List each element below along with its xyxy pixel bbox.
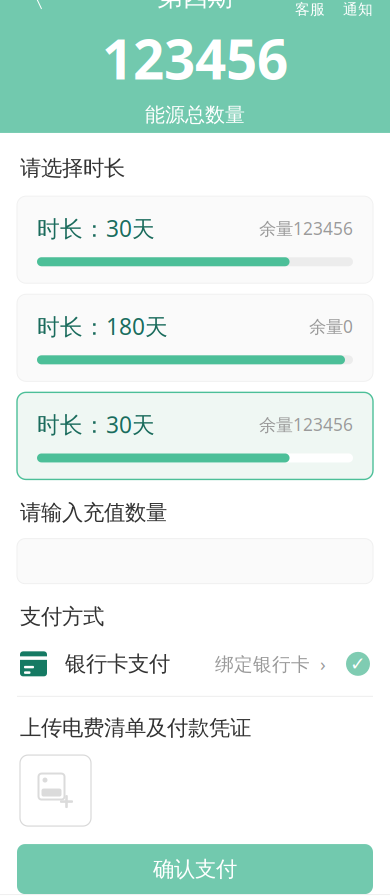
button[interactable]: Upload image [20, 755, 91, 826]
staticText: 〈 [16, 0, 45, 15]
button[interactable]: 我的 [312, 894, 390, 896]
button[interactable]: 时长：30天 [17, 196, 373, 283]
staticText: 客服 [295, 0, 325, 18]
staticText: 余量123456 [259, 217, 353, 240]
staticText: 余量0 [309, 315, 353, 338]
staticText: 请输入充值数量 [20, 499, 167, 526]
staticText: 银行卡支付 [65, 651, 170, 677]
staticText: 时长：30天 [37, 213, 155, 243]
staticText: 绑定银行卡 › [215, 651, 326, 676]
button[interactable]: 银行卡支付 [0, 642, 390, 686]
button[interactable]: Back [8, 0, 54, 20]
staticText: 上传电费清单及付款凭证 [20, 715, 251, 741]
button[interactable]: 商城 [78, 894, 156, 896]
button[interactable]: 客服 [286, 0, 334, 20]
staticText: 时长：180天 [37, 311, 168, 341]
button[interactable]: Energy [156, 894, 234, 896]
staticText: 123456 [102, 22, 288, 94]
button[interactable]: 通知 [334, 0, 382, 20]
staticText: 通知 [343, 0, 373, 18]
button[interactable]: ⌂ [0, 894, 78, 896]
staticText: 请选择时长 [20, 155, 125, 181]
staticText: 时长：30天 [37, 409, 155, 439]
staticText: 支付方式 [20, 604, 104, 630]
button[interactable]: 确认支付 [17, 844, 373, 894]
button[interactable]: 时长：30天 [17, 392, 373, 479]
staticText: ✓ [350, 653, 366, 674]
staticText: 余量123456 [259, 413, 353, 436]
button[interactable]: 时长：180天 [17, 294, 373, 381]
staticText: 第四期 [157, 0, 232, 12]
staticText: 能源总数量 [145, 102, 245, 127]
button[interactable]: ∿ [234, 894, 312, 896]
staticText: 确认支付 [153, 856, 237, 882]
